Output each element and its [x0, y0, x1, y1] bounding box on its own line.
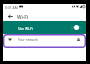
button[interactable]: Back — [5, 11, 16, 21]
button[interactable]: Use Wi-Fi — [3, 21, 86, 34]
staticText: Your network — [18, 38, 39, 42]
button[interactable]: Your network — [3, 34, 86, 48]
staticText: Wi-Fi — [17, 14, 29, 21]
staticText: Use Wi-Fi — [18, 26, 33, 31]
staticText: 8:01 AM — [5, 5, 18, 10]
